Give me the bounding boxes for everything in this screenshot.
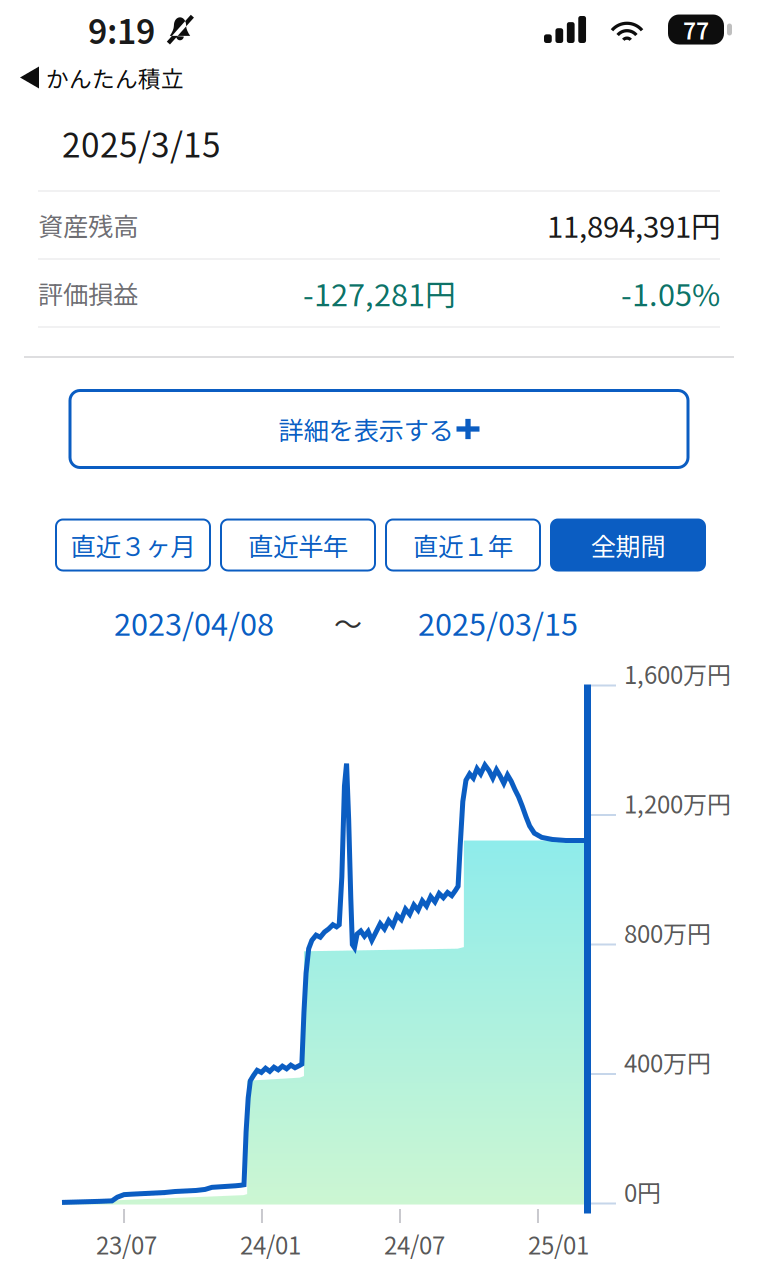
staticText: 23/07 [96,1227,157,1261]
staticText: かんたん積立 [46,61,184,94]
button[interactable]: 直近半年 [221,519,375,570]
staticText: 直近３ヶ月 [70,527,195,563]
staticText: 77 [683,13,709,46]
staticText: 全期間 [590,527,665,563]
staticText: 資産残高 [38,207,138,243]
staticText: 400万円 [624,1045,711,1079]
staticText: 詳細を表示する [278,411,453,447]
staticText: 2023/04/08 [114,600,274,645]
button[interactable]: 詳細を表示する [70,390,688,467]
staticText: 評価損益 [38,275,138,311]
staticText: -127,281円 [303,271,456,315]
staticText: 1,600万円 [624,656,731,691]
staticText: 25/01 [528,1227,589,1261]
staticText: 〜 [334,602,362,643]
button[interactable]: かんたん積立 [0,59,198,95]
staticText: 11,894,391円 [547,204,720,246]
staticText: 24/01 [240,1227,301,1261]
staticText: 0円 [624,1174,661,1209]
staticText: 24/07 [384,1227,445,1261]
button[interactable]: 直近１年 [386,519,540,570]
staticText: 直近１年 [413,527,513,563]
button[interactable]: 直近３ヶ月 [56,519,210,570]
staticText: 直近半年 [248,527,348,563]
staticText: 800万円 [624,915,711,950]
staticText: 2025/03/15 [418,600,578,645]
staticText: 1,200万円 [624,786,731,820]
staticText: 2025/3/15 [62,119,221,167]
staticText: -1.05% [621,271,720,315]
staticText: 9:19 [88,5,155,54]
button[interactable]: 全期間 [551,519,705,570]
